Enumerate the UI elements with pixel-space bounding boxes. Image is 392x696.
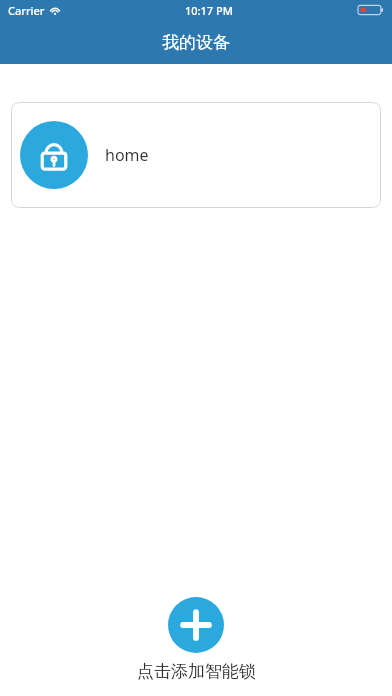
staticText: 点击添加智能锁 bbox=[137, 661, 256, 682]
staticText: 我的设备 bbox=[162, 32, 230, 53]
button[interactable]: 添加智能锁 bbox=[168, 597, 224, 653]
button[interactable]: home bbox=[11, 102, 381, 208]
staticText: 10:17 PM bbox=[185, 3, 233, 18]
staticText: home bbox=[105, 144, 149, 166]
staticText: Carrier bbox=[8, 3, 45, 18]
